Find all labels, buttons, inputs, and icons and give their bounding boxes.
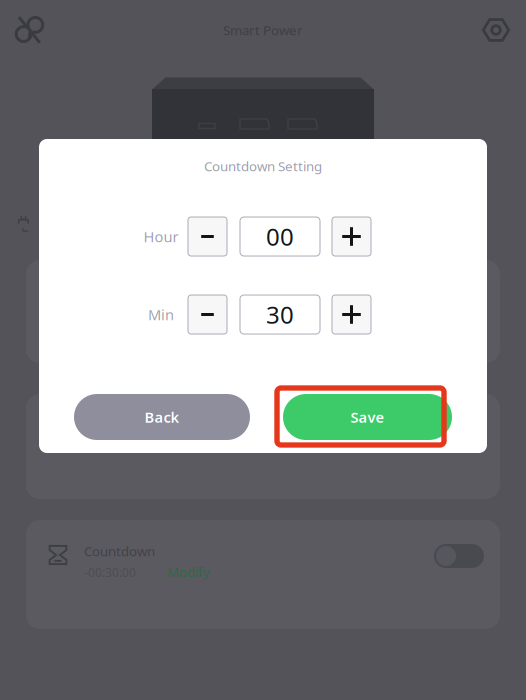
button[interactable]: Increase	[332, 217, 371, 256]
staticText: 30	[266, 299, 294, 330]
staticText: Hour	[143, 227, 178, 246]
staticText: Back	[144, 407, 179, 427]
button[interactable]: Save	[283, 394, 452, 440]
staticText: Modify	[167, 563, 210, 581]
staticText: 00	[266, 221, 294, 252]
button[interactable]: Back	[74, 394, 250, 440]
staticText: Min	[148, 305, 174, 324]
button[interactable]: Decrease	[188, 217, 227, 256]
staticText: Countdown Setting	[204, 157, 322, 175]
staticText: Countdown	[84, 542, 155, 560]
staticText: Save	[350, 407, 384, 427]
button[interactable]: Device not connected	[7, 7, 53, 53]
button[interactable]: Settings	[473, 7, 519, 53]
button[interactable]: Countdown on or off	[434, 544, 484, 568]
staticText: -00:30:00	[84, 564, 136, 580]
button[interactable]: Increase	[332, 295, 371, 334]
button[interactable]: Decrease	[188, 295, 227, 334]
staticText: Smart Power	[223, 21, 303, 39]
